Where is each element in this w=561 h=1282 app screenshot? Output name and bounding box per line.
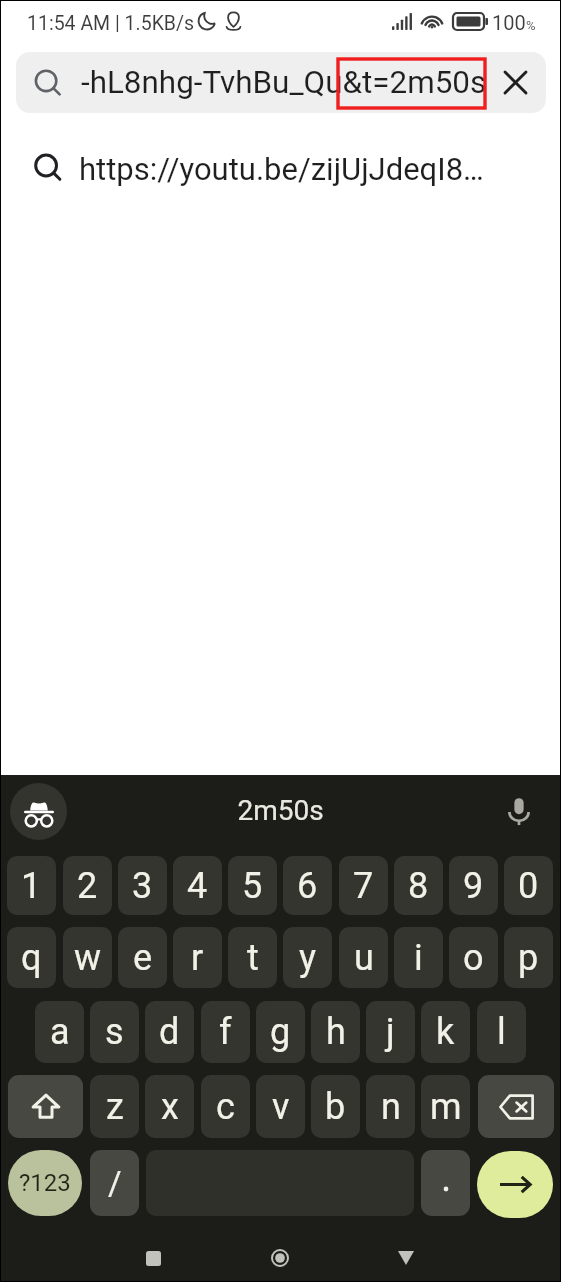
button[interactable]: Shift: [8, 1075, 83, 1138]
staticText: 2m50s: [0, 794, 561, 827]
staticText: v: [272, 1086, 290, 1128]
staticText: j: [386, 1011, 395, 1053]
staticText: k: [436, 1011, 455, 1053]
staticText: 8: [408, 865, 429, 907]
button[interactable]: 5: [228, 856, 277, 915]
button[interactable]: n: [366, 1075, 415, 1138]
button[interactable]: /: [90, 1150, 139, 1216]
staticText: i: [414, 937, 423, 979]
button[interactable]: 9: [449, 856, 498, 915]
button[interactable]: e: [118, 927, 167, 988]
button[interactable]: Clear search: [498, 65, 533, 100]
button[interactable]: q: [7, 927, 56, 988]
button[interactable]: w: [63, 927, 112, 988]
button[interactable]: Period: [421, 1150, 470, 1216]
staticText: %: [526, 18, 536, 33]
button[interactable]: 8: [394, 856, 443, 915]
button[interactable]: 7: [339, 856, 388, 915]
button[interactable]: s: [90, 1001, 139, 1063]
button[interactable]: x: [145, 1075, 194, 1138]
staticText: a: [50, 1011, 70, 1053]
button[interactable]: Home: [256, 1240, 304, 1276]
button[interactable]: Incognito mode: [10, 783, 67, 840]
button[interactable]: f: [201, 1001, 250, 1063]
button[interactable]: 4: [173, 856, 222, 915]
staticText: 100: [492, 11, 526, 34]
staticText: h: [326, 1011, 346, 1053]
staticText: s: [105, 1011, 124, 1053]
staticText: f: [219, 1011, 232, 1053]
staticText: o: [463, 937, 484, 979]
button[interactable]: i: [394, 927, 443, 988]
staticText: c: [216, 1086, 235, 1128]
staticText: 9: [463, 865, 484, 907]
button[interactable]: o: [449, 927, 498, 988]
staticText: 6: [297, 865, 318, 907]
staticText: 11:54 AM | 1.5KB/s: [27, 12, 195, 35]
staticText: 3: [132, 865, 153, 907]
staticText: 1: [21, 865, 42, 907]
button[interactable]: https://youtu.be/zijUjJdeqI8…: [0, 136, 561, 196]
staticText: https://youtu.be/zijUjJdeqI8…: [79, 151, 484, 187]
button[interactable]: a: [35, 1001, 84, 1063]
button[interactable]: 2: [63, 856, 112, 915]
staticText: y: [299, 937, 317, 979]
button[interactable]: k: [421, 1001, 470, 1063]
staticText: u: [354, 937, 374, 979]
staticText: 2: [77, 865, 98, 907]
button[interactable]: Recent apps: [129, 1240, 177, 1276]
button[interactable]: u: [339, 927, 388, 988]
button[interactable]: 1: [7, 856, 56, 915]
staticText: q: [21, 937, 42, 979]
button[interactable]: Backspace: [478, 1075, 554, 1138]
button[interactable]: ?123: [8, 1150, 82, 1216]
button[interactable]: b: [311, 1075, 360, 1138]
button[interactable]: c: [201, 1075, 250, 1138]
staticText: 7: [353, 865, 374, 907]
staticText: e: [133, 937, 153, 979]
button[interactable]: Search: [477, 1151, 553, 1218]
staticText: -hL8nhg-TvhBu_Qu&t=2m50s: [81, 64, 487, 101]
button[interactable]: d: [145, 1001, 194, 1063]
button[interactable]: -hL8nhg-TvhBu_Qu&t=2m50s: [16, 52, 546, 113]
button[interactable]: y: [283, 927, 332, 988]
button[interactable]: v: [256, 1075, 305, 1138]
staticText: 0: [518, 865, 539, 907]
button[interactable]: 3: [118, 856, 167, 915]
staticText: z: [106, 1086, 124, 1128]
button[interactable]: l: [477, 1001, 526, 1063]
button[interactable]: p: [504, 927, 553, 988]
staticText: w: [74, 937, 102, 979]
button[interactable]: g: [256, 1001, 305, 1063]
staticText: t: [247, 937, 259, 979]
button[interactable]: 6: [283, 856, 332, 915]
button[interactable]: Voice input: [495, 787, 543, 835]
staticText: d: [159, 1011, 180, 1053]
staticText: 4: [187, 865, 208, 907]
button[interactable]: r: [173, 927, 222, 988]
staticText: ?123: [19, 1169, 71, 1197]
staticText: r: [191, 937, 204, 979]
staticText: n: [381, 1086, 401, 1128]
button[interactable]: Back: [382, 1240, 430, 1276]
staticText: x: [161, 1086, 179, 1128]
staticText: p: [518, 937, 539, 979]
button[interactable]: t: [228, 927, 277, 988]
staticText: b: [325, 1086, 346, 1128]
staticText: g: [270, 1011, 291, 1053]
staticText: l: [497, 1011, 506, 1053]
button[interactable]: m: [421, 1075, 470, 1138]
staticText: 5: [242, 865, 263, 907]
button[interactable]: h: [311, 1001, 360, 1063]
staticText: m: [430, 1086, 462, 1128]
button[interactable]: z: [90, 1075, 139, 1138]
button[interactable]: 0: [504, 856, 553, 915]
staticText: /: [108, 1164, 122, 1203]
button[interactable]: j: [366, 1001, 415, 1063]
